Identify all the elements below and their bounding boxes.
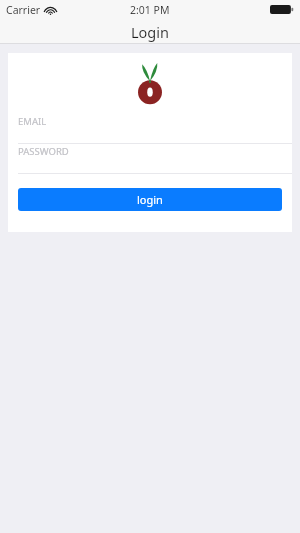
other: App logo xyxy=(137,63,163,105)
button[interactable]: login xyxy=(18,188,282,211)
staticText: PASSWORD xyxy=(18,145,69,158)
staticText: login xyxy=(137,192,163,207)
staticText: 2:01 PM xyxy=(130,3,170,17)
button[interactable]: EMAIL xyxy=(8,114,292,143)
staticText: Carrier xyxy=(6,3,41,17)
staticText: EMAIL xyxy=(18,115,47,128)
button[interactable]: PASSWORD xyxy=(8,144,292,173)
staticText: Login xyxy=(131,22,169,42)
